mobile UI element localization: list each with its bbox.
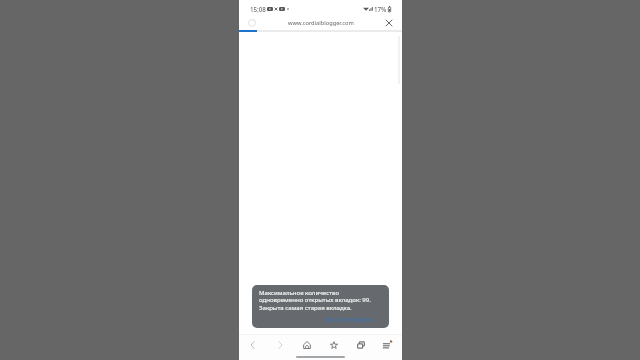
button[interactable]: Bookmarks bbox=[321, 336, 348, 354]
staticText: 17% bbox=[374, 5, 387, 13]
button[interactable]: Page info bbox=[245, 16, 258, 29]
staticText: 15:08 bbox=[250, 5, 266, 13]
button[interactable]: Home bbox=[294, 336, 321, 354]
button[interactable]: Back bbox=[239, 336, 267, 354]
button[interactable]: ВОССТАНОВИТЬ bbox=[324, 314, 375, 324]
button[interactable]: Menu bbox=[375, 336, 402, 354]
button[interactable]: Stop loading bbox=[382, 16, 395, 29]
button[interactable]: Tabs bbox=[348, 336, 375, 354]
button[interactable]: Максимальное количество одновременно отк… bbox=[252, 285, 389, 328]
staticText: ВОССТАНОВИТЬ bbox=[325, 315, 374, 323]
button[interactable]: Forward bbox=[267, 336, 294, 354]
staticText: Максимальное количество одновременно отк… bbox=[259, 288, 375, 312]
staticText: www.cordialblogger.com bbox=[288, 19, 354, 27]
